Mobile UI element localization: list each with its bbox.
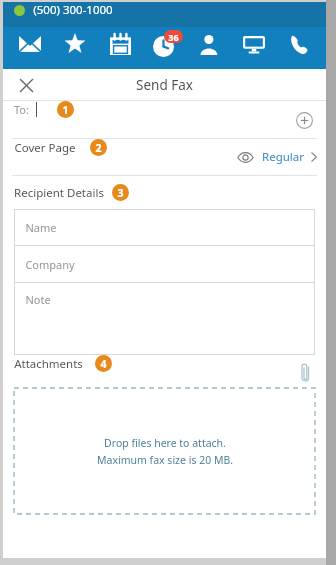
button[interactable]: Drop files here to attach — [14, 388, 315, 514]
staticText: 36 — [168, 31, 179, 43]
button[interactable]: Cover Page — [3, 139, 326, 175]
staticText: 2 — [95, 141, 102, 155]
staticText: 3 — [117, 186, 124, 200]
staticText: Cover Page — [14, 140, 76, 156]
button[interactable]: History, 36 items — [148, 27, 182, 61]
staticText: Regular — [262, 149, 304, 165]
button[interactable]: Close — [9, 69, 43, 101]
button[interactable]: Call — [282, 27, 316, 61]
staticText: Send Fax — [136, 76, 193, 94]
button[interactable]: Attach file — [292, 359, 318, 385]
staticText: Drop files here to attach. — [104, 436, 226, 450]
staticText: Recipient Details — [14, 185, 104, 201]
staticText: Company — [25, 257, 75, 272]
staticText: 4 — [100, 357, 107, 371]
button[interactable]: Contacts — [192, 27, 226, 61]
button[interactable]: Name — [14, 209, 315, 245]
staticText: Note — [25, 292, 51, 307]
staticText: 1 — [62, 103, 69, 117]
button[interactable]: Note — [14, 283, 315, 355]
staticText: Maximum fax size is 20 MB. — [97, 453, 233, 467]
button[interactable]: To: — [3, 101, 326, 138]
staticText: (500) 300-1000 — [33, 2, 113, 18]
button[interactable]: Mail — [13, 27, 47, 61]
button[interactable]: Desktop — [237, 27, 271, 61]
staticText: Attachments — [14, 356, 83, 372]
button[interactable]: Add recipient — [291, 107, 317, 133]
button[interactable]: Company — [14, 246, 315, 282]
button[interactable]: Favorites — [58, 27, 92, 61]
staticText: Name — [25, 220, 57, 235]
staticText: To: — [14, 102, 29, 117]
button[interactable]: Calendar — [103, 27, 137, 61]
